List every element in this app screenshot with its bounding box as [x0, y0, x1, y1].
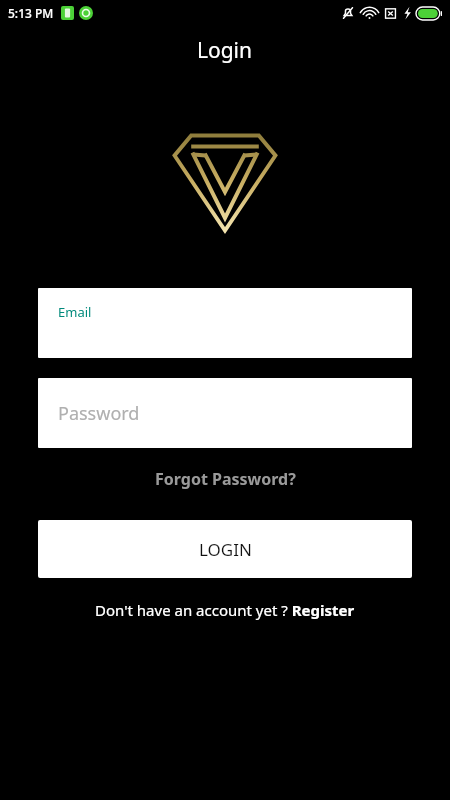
staticText: Login [197, 36, 253, 65]
button[interactable]: Password [38, 378, 412, 448]
button[interactable]: Don't have an account yet ? Register [85, 596, 365, 624]
staticText: 5:13 PM [8, 5, 54, 21]
button[interactable]: LOGIN [38, 520, 412, 578]
staticText: LOGIN [199, 538, 252, 561]
staticText: Password [58, 401, 140, 426]
button[interactable]: Email [38, 288, 412, 358]
button[interactable]: Forgot Password? [143, 462, 308, 496]
staticText: Email [58, 303, 92, 321]
staticText: Don't have an account yet ? Register [95, 600, 355, 620]
staticText: Forgot Password? [155, 468, 296, 490]
